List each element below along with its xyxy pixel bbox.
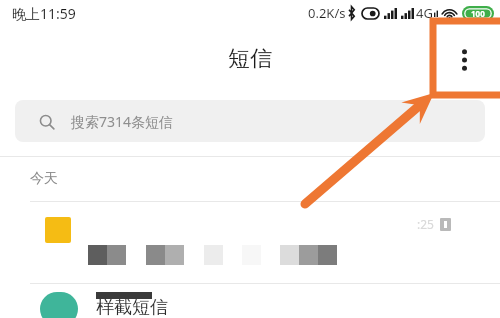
button[interactable]: 搜索7314条短信 xyxy=(15,100,485,142)
staticText: 短信 xyxy=(228,45,272,73)
staticText: 100 xyxy=(471,8,485,19)
staticText: :25 xyxy=(417,216,434,232)
button[interactable]: More options xyxy=(444,40,484,80)
button[interactable]: 样截短信 xyxy=(0,284,500,318)
staticText: 晚上11:59 xyxy=(12,4,76,23)
staticText: 今天 xyxy=(30,170,58,188)
staticText: 搜索7314条短信 xyxy=(71,112,174,131)
staticText: 样截短信 xyxy=(96,296,168,318)
button[interactable]: :25 xyxy=(0,202,500,283)
staticText: 0.2K/s xyxy=(308,4,346,22)
staticText: 4G xyxy=(416,4,433,22)
